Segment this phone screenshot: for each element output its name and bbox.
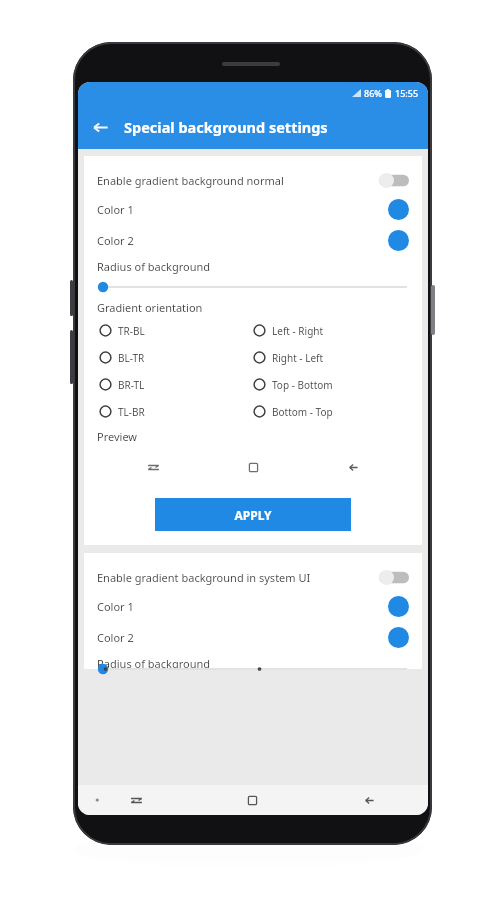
button[interactable]: Pick color [388,596,409,617]
button[interactable]: Bottom - Top [253,398,409,425]
button[interactable]: Back [311,785,428,815]
button[interactable]: Recents [78,785,194,815]
staticText: Color 2 [97,630,134,645]
staticText: BR-TL [118,378,145,392]
button[interactable]: Enable gradient background normal [97,166,409,194]
button[interactable]: Home [203,450,303,484]
button[interactable]: TL-BR [99,398,253,425]
button[interactable]: Enable gradient background in system UI [97,563,409,591]
button[interactable]: BL-TR [99,344,253,371]
button[interactable]: TR-BL [99,317,253,344]
button[interactable]: Radius slider [97,279,409,295]
staticText: 86% [364,87,382,99]
staticText: Top - Bottom [272,378,333,392]
button[interactable]: APPLY [155,498,351,531]
button[interactable]: Toggle [379,173,409,188]
button[interactable]: Back [78,105,122,149]
staticText: Color 1 [97,599,134,614]
staticText: Enable gradient background normal [97,173,284,188]
staticText: Right - Left [272,351,324,365]
button[interactable]: Pick color [388,627,409,648]
button[interactable]: Top - Bottom [253,371,409,398]
button[interactable]: Toggle [379,570,409,585]
button[interactable]: Home [194,785,311,815]
button[interactable]: Left - Right [253,317,409,344]
staticText: 15:55 [395,87,419,99]
staticText: Color 1 [97,202,134,217]
staticText: Radius of background [97,259,211,274]
button[interactable]: Color 2 [97,225,409,256]
button[interactable]: Recents [103,450,203,484]
staticText: Radius of background [97,656,211,669]
button[interactable]: Right - Left [253,344,409,371]
staticText: Bottom - Top [272,405,333,419]
staticText: APPLY [234,507,272,523]
button[interactable]: Color 1 [97,591,409,622]
staticText: Preview [97,429,138,444]
button[interactable]: Color 2 [97,622,409,653]
staticText: TL-BR [118,405,145,419]
button[interactable]: Color 1 [97,194,409,225]
button[interactable]: BR-TL [99,371,253,398]
button[interactable]: Pick color [388,199,409,220]
button[interactable]: Pick color [388,230,409,251]
button[interactable]: Back [303,450,403,484]
staticText: BL-TR [118,351,145,365]
staticText: Left - Right [272,324,324,338]
staticText: Enable gradient background in system UI [97,570,311,585]
staticText: Gradient orientation [97,300,203,315]
staticText: Color 2 [97,233,134,248]
staticText: Special background settings [124,117,328,137]
staticText: TR-BL [118,324,145,338]
